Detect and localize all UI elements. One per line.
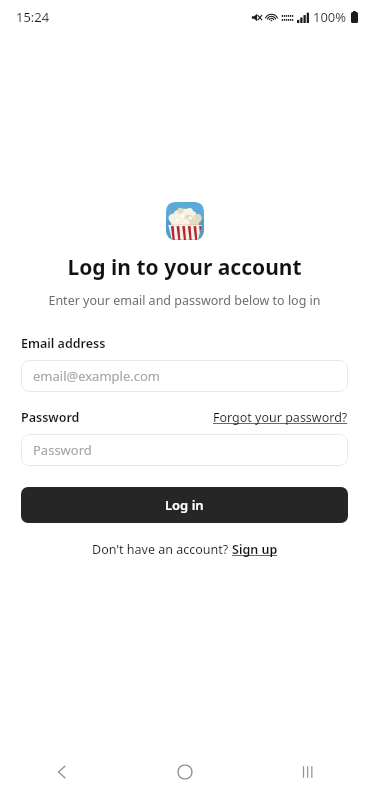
staticText: email@example.com: [33, 367, 160, 385]
staticText: 15:24: [16, 8, 50, 26]
button[interactable]: Sign up: [232, 541, 278, 558]
button[interactable]: email@example.com: [21, 360, 348, 392]
button[interactable]: Back: [0, 744, 123, 800]
button[interactable]: Home: [123, 744, 246, 800]
staticText: Log in: [165, 496, 204, 514]
staticText: Password: [33, 441, 92, 459]
staticText: Log in to your account: [0, 253, 369, 282]
staticText: Enter your email and password below to l…: [0, 292, 369, 309]
staticText: Sign up: [232, 541, 278, 558]
button[interactable]: Password: [21, 434, 348, 466]
staticText: Email address: [21, 335, 106, 352]
staticText: Forgot your password?: [213, 409, 348, 426]
button[interactable]: Recent apps: [246, 744, 369, 800]
button[interactable]: Log in: [21, 487, 348, 523]
button[interactable]: Forgot your password?: [213, 409, 348, 426]
staticText: Password: [21, 409, 80, 426]
staticText: Don't have an account?: [92, 541, 232, 558]
staticText: 100%: [313, 8, 347, 26]
